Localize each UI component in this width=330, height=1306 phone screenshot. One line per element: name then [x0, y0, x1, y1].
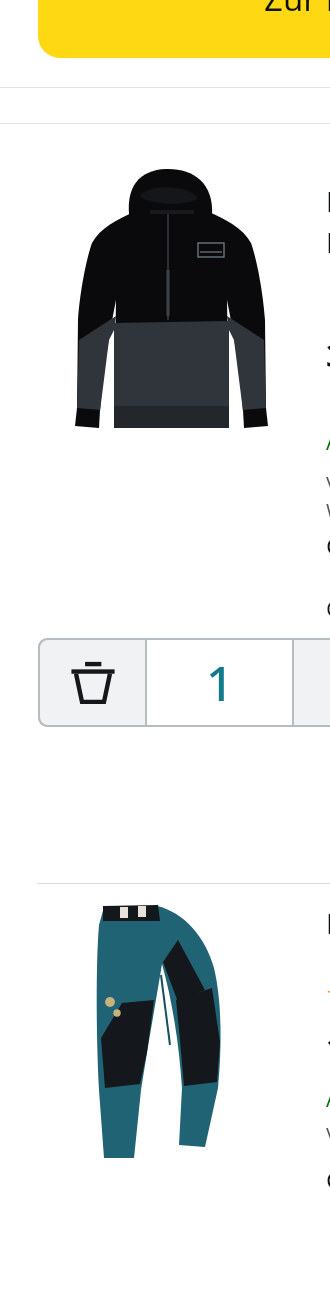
staticText: Größe: L: [326, 529, 330, 562]
staticText: Verkauft von Fox Racing: [326, 1121, 330, 1148]
button[interactable]: 1: [147, 640, 292, 725]
staticText: 1: [206, 650, 234, 715]
staticText: Mountain Warehouse Herren Hoodie Kapuzen…: [326, 183, 330, 261]
staticText: Größe: 32: [326, 1163, 330, 1196]
staticText: Auf Lager: [326, 1085, 330, 1114]
staticText: Zur Kasse (2 Artikel): [264, 0, 330, 21]
button[interactable]: Artikel entfernen: [40, 640, 145, 725]
button[interactable]: Zur Kasse (2 Artikel): [38, 0, 330, 58]
staticText: 39,99 €: [326, 335, 330, 376]
staticText: Fox Racing Defend Hose Herren Radhose: [326, 905, 330, 942]
staticText: Geschenkverpackung: [326, 593, 330, 623]
staticText: 129,95 €: [326, 1027, 330, 1068]
staticText: ★★★★☆: [326, 981, 330, 1007]
staticText: Verkauft von Mountain Warehouse: [326, 470, 330, 524]
staticText: Auf Lager: [326, 428, 330, 457]
